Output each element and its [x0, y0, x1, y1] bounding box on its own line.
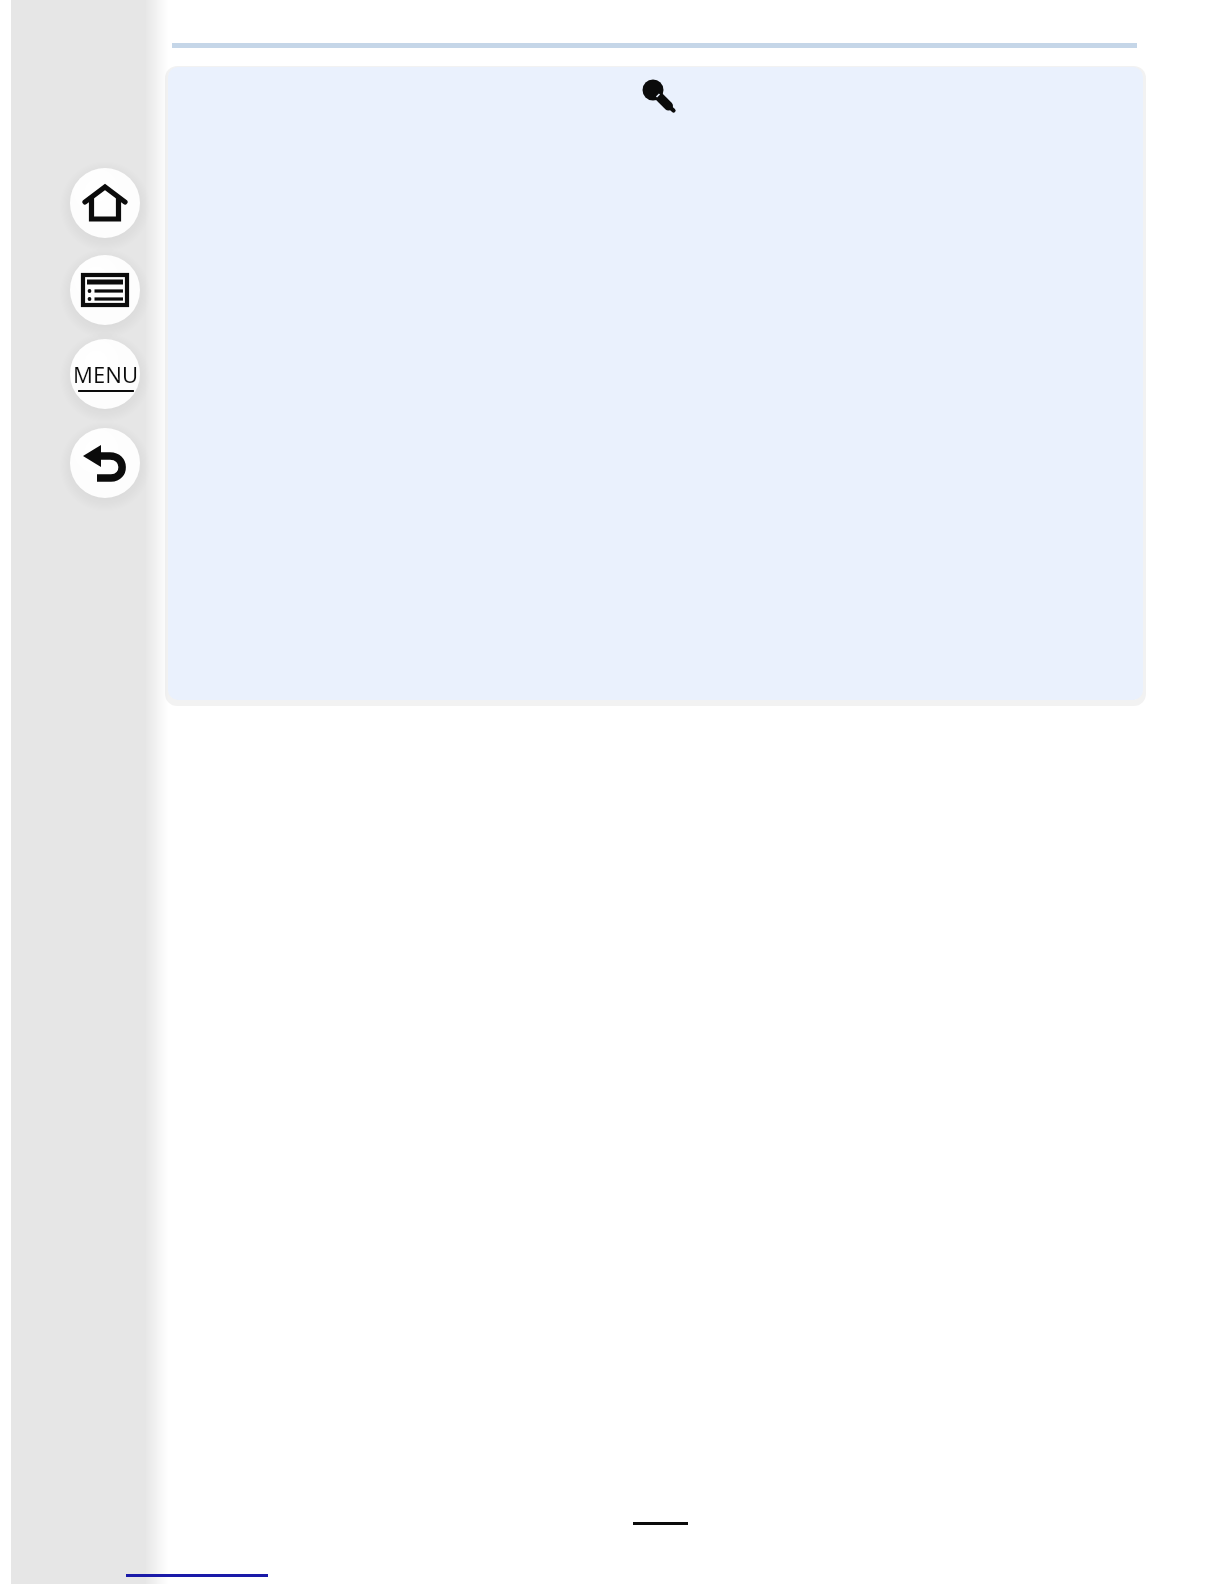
- button[interactable]: Home: [70, 168, 140, 238]
- button[interactable]: List: [70, 255, 140, 325]
- button[interactable]: Link: [126, 1560, 268, 1582]
- button[interactable]: Content area: [168, 67, 1143, 700]
- button[interactable]: Menu: [70, 339, 140, 409]
- button[interactable]: Back: [70, 428, 140, 498]
- staticText: MENU: [73, 359, 138, 389]
